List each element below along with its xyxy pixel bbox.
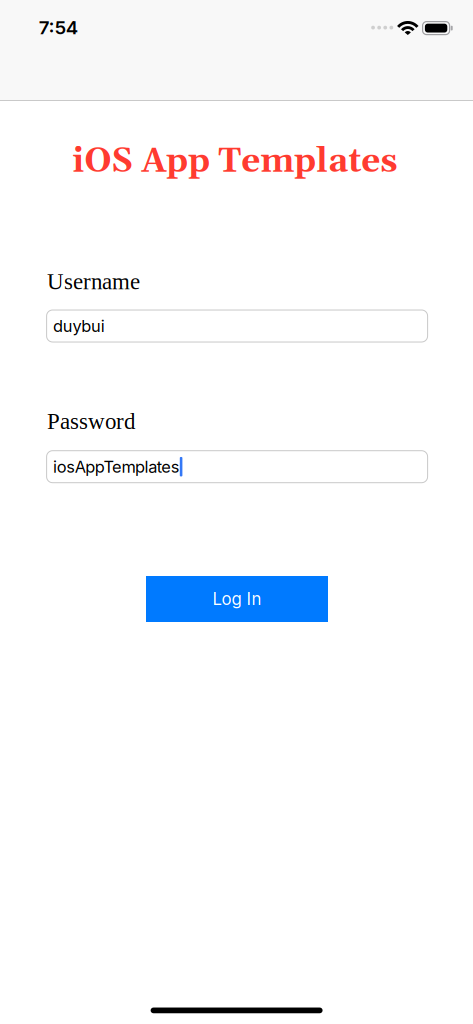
- staticText: Password: [47, 409, 135, 434]
- staticText: 7:54: [39, 16, 78, 39]
- staticText: duybui: [53, 316, 105, 336]
- staticText: Log In: [212, 589, 261, 609]
- staticText: iOS App Templates: [72, 141, 397, 183]
- staticText: iosAppTemplates: [53, 457, 180, 477]
- button[interactable]: Password: [47, 451, 428, 483]
- button[interactable]: Username: [47, 310, 428, 342]
- staticText: Username: [47, 269, 140, 294]
- button[interactable]: Log In: [146, 576, 328, 622]
